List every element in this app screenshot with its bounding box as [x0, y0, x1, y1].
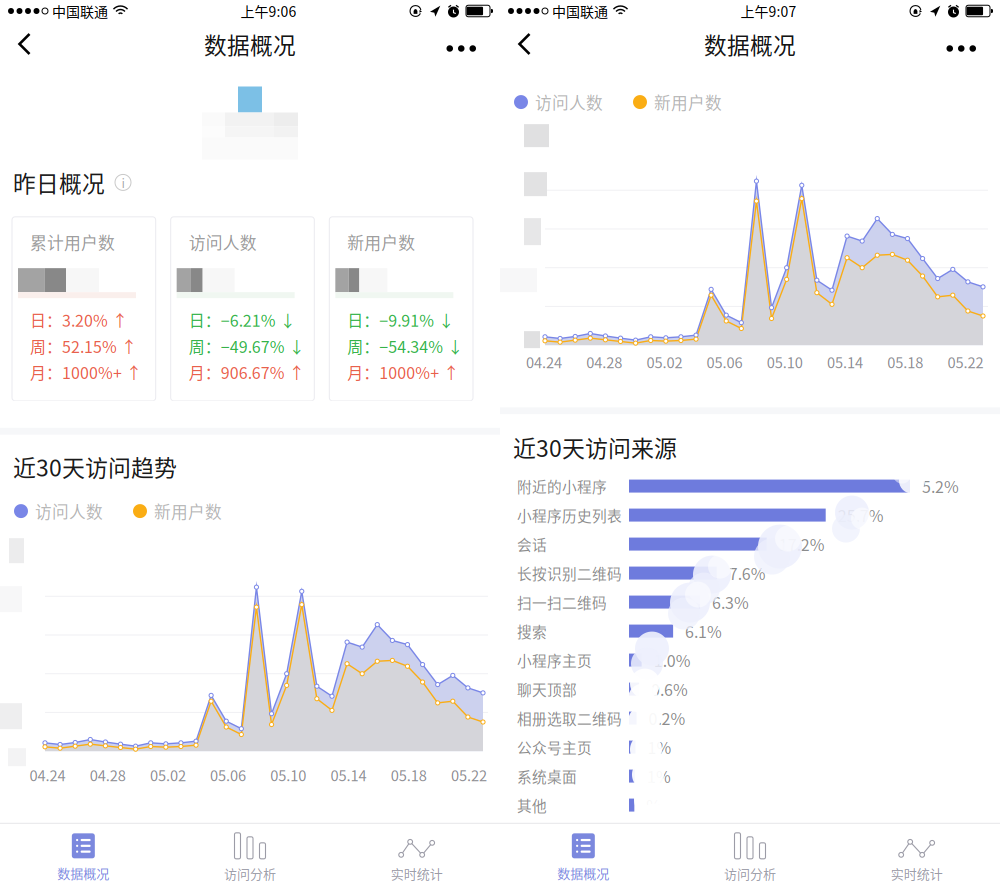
staticText: 月：906.67% ↑ — [189, 360, 305, 384]
staticText: i — [121, 173, 124, 191]
button[interactable]: 访问分析 — [167, 824, 333, 884]
staticText: 聊天顶部 — [517, 678, 577, 700]
staticText: 附近的小程序 — [517, 475, 607, 497]
staticText: 数据概况 — [204, 28, 296, 60]
button[interactable]: 更多 — [928, 22, 1000, 66]
button[interactable]: 更多 — [428, 22, 500, 66]
staticText: 05.02 — [646, 351, 682, 372]
staticText: 04.28 — [586, 351, 622, 372]
staticText: 周：52.15% ↑ — [30, 334, 137, 357]
button[interactable]: 实时统计 — [333, 824, 500, 884]
staticText: 05.06 — [707, 351, 743, 372]
staticText: 系统桌面 — [517, 765, 577, 787]
staticText: 05.22 — [947, 351, 983, 372]
staticText: 会话 — [517, 533, 547, 555]
staticText: 小程序主页 — [517, 649, 592, 671]
staticText: 访问人数 — [35, 499, 103, 523]
staticText: 长按识别二维码 — [517, 562, 622, 584]
staticText: 新用户数 — [347, 230, 415, 254]
button[interactable]: 返回 — [0, 21, 52, 66]
staticText: 累计用户数 — [30, 230, 115, 254]
staticText: 0.6% — [651, 677, 688, 701]
staticText: 访问分析 — [224, 864, 276, 883]
staticText: 05.18 — [887, 351, 923, 372]
staticText: 小程序历史列表 — [517, 504, 622, 526]
staticText: 17.2% — [779, 532, 825, 556]
staticText: 实时统计 — [891, 864, 943, 883]
staticText: 0.2% — [649, 706, 686, 730]
button[interactable]: 访问分析 — [667, 824, 833, 884]
staticText: 近30天访问趋势 — [13, 450, 177, 483]
staticText: 05.02 — [150, 764, 186, 785]
staticText: 新用户数 — [154, 499, 222, 523]
staticText: 05.22 — [451, 764, 487, 785]
staticText: 月：1000%+ ↑ — [30, 360, 142, 384]
button[interactable]: 数据概况 — [500, 824, 667, 884]
staticText: 周：−49.67% ↓ — [189, 334, 305, 357]
staticText: 数据概况 — [57, 863, 109, 882]
button[interactable]: 实时统计 — [833, 824, 1000, 884]
staticText: 昨日概况 — [13, 166, 105, 199]
staticText: 搜索 — [517, 620, 547, 642]
staticText: 中国联通 — [552, 1, 608, 21]
staticText: 月：1000%+ ↑ — [347, 360, 459, 384]
staticText: 05.18 — [391, 764, 427, 785]
staticText: 数据概况 — [704, 28, 796, 60]
staticText: 日：−6.21% ↓ — [189, 308, 296, 331]
staticText: 实时统计 — [391, 864, 443, 883]
staticText: 6.3% — [712, 590, 749, 614]
staticText: 相册选取二维码 — [517, 707, 622, 729]
staticText: 25.7% — [838, 503, 884, 527]
staticText: 访问人数 — [535, 90, 603, 114]
staticText: 05.10 — [767, 351, 803, 372]
staticText: 1% — [647, 735, 671, 759]
staticText: 访问分析 — [724, 864, 776, 883]
button[interactable]: 数据概况 — [0, 824, 167, 884]
staticText: 6.1% — [685, 619, 722, 643]
staticText: 数据概况 — [557, 863, 609, 882]
staticText: 5.2% — [922, 474, 959, 498]
staticText: 其他 — [517, 794, 547, 816]
staticText: 公众号主页 — [517, 736, 592, 758]
staticText: 日：3.20% ↑ — [30, 308, 128, 331]
staticText: 1% — [647, 764, 671, 788]
staticText: 访问人数 — [189, 230, 257, 254]
staticText: 上午9:07 — [740, 1, 796, 21]
staticText: 扫一扫二维码 — [517, 591, 607, 613]
staticText: 周：−54.34% ↓ — [347, 334, 463, 357]
staticText: 05.10 — [270, 764, 306, 785]
staticText: 7.6% — [729, 561, 766, 585]
staticText: 05.06 — [210, 764, 246, 785]
staticText: 04.24 — [29, 764, 65, 785]
staticText: 1.0% — [654, 648, 691, 672]
staticText: 中国联通 — [52, 1, 108, 21]
staticText: 05.14 — [827, 351, 863, 372]
staticText: 04.28 — [90, 764, 126, 785]
staticText: 04.24 — [526, 351, 562, 372]
button[interactable]: 返回 — [500, 21, 552, 66]
staticText: 05.14 — [330, 764, 366, 785]
staticText: 日：−9.91% ↓ — [347, 308, 454, 331]
staticText: 上午9:06 — [240, 1, 296, 21]
staticText: 近30天访问来源 — [513, 430, 677, 464]
staticText: 新用户数 — [654, 90, 722, 114]
